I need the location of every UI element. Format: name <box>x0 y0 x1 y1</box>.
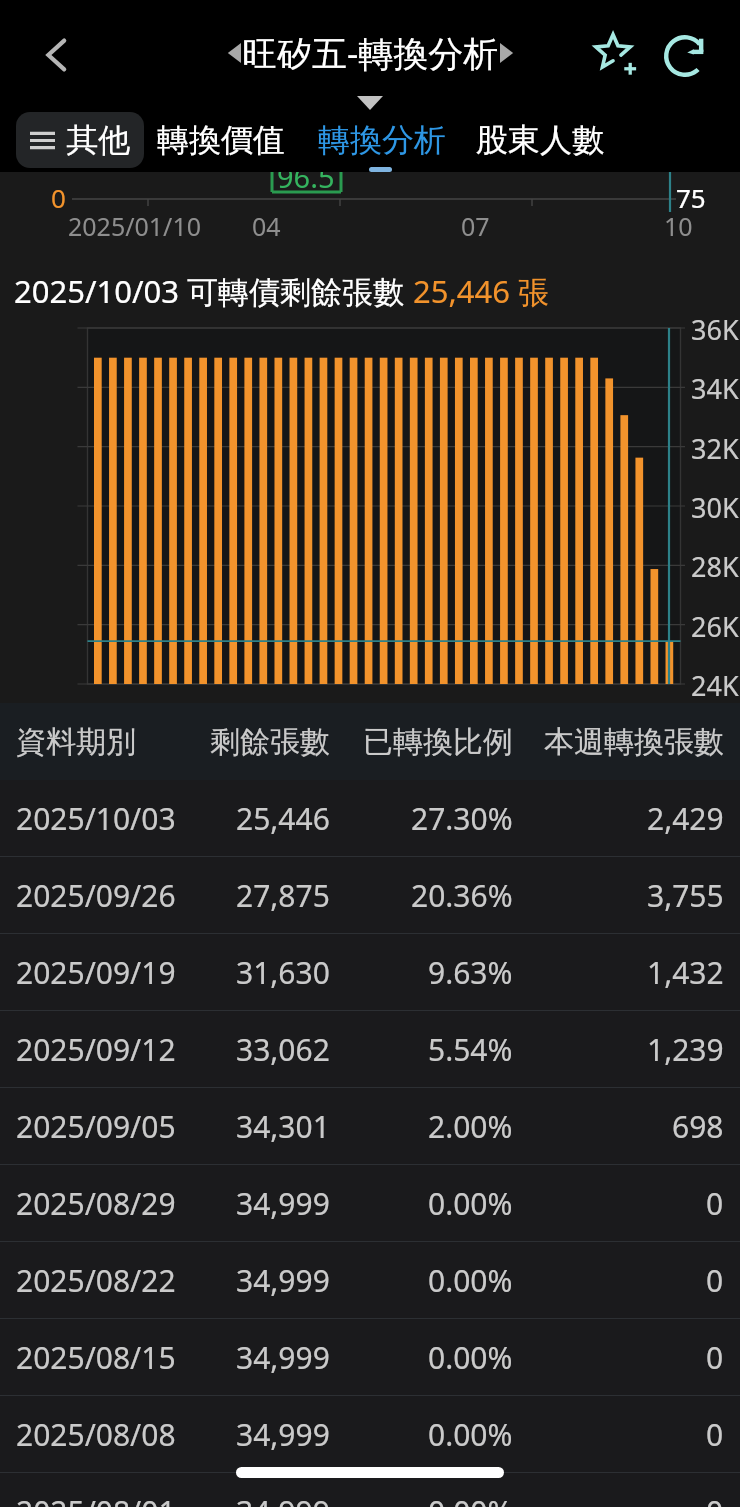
staticText: 1,239 <box>647 1029 724 1070</box>
staticText: 2025/09/12 <box>16 1029 176 1070</box>
button[interactable]: 2025/09/05 <box>0 1088 740 1164</box>
button[interactable]: 股東人數 <box>476 112 604 168</box>
staticText: 34,301 <box>236 1106 330 1147</box>
staticText: 698 <box>672 1106 724 1147</box>
staticText: 轉換分析 <box>318 120 446 160</box>
staticText: 34,999 <box>236 1183 330 1224</box>
staticText: 2025/08/22 <box>16 1260 176 1301</box>
staticText: 75 <box>676 180 706 215</box>
staticText: 96.5 <box>277 157 335 196</box>
staticText: 31,630 <box>236 952 330 993</box>
staticText: 1,432 <box>647 952 724 993</box>
button[interactable]: 2025/08/08 <box>0 1396 740 1472</box>
button[interactable]: 2025/09/26 <box>0 857 740 933</box>
button[interactable]: 2025/09/12 <box>0 1011 740 1087</box>
staticText: 資料期別 <box>16 723 136 761</box>
staticText: 33,062 <box>236 1029 330 1070</box>
staticText: 0 <box>51 180 66 215</box>
staticText: 34,999 <box>236 1491 330 1507</box>
staticText: 本週轉換張數 <box>544 723 724 761</box>
staticText: 28K <box>691 548 739 585</box>
staticText: 旺矽五-轉換分析 <box>242 29 499 77</box>
staticText: 0.00% <box>428 1337 513 1378</box>
staticText: 10 <box>664 209 693 243</box>
staticText: 0 <box>706 1414 724 1455</box>
staticText: 26K <box>691 608 739 645</box>
staticText: 0 <box>706 1260 724 1301</box>
staticText: 2.00% <box>428 1106 513 1147</box>
staticText: 24K <box>691 667 739 704</box>
button[interactable]: 2025/09/19 <box>0 934 740 1010</box>
button[interactable]: 旺矽五-轉換分析 <box>227 29 514 77</box>
staticText: 2025/10/03 <box>16 798 176 839</box>
button[interactable]: 2025/08/01 <box>0 1473 740 1507</box>
button[interactable]: Back <box>26 24 88 86</box>
staticText: 34,999 <box>236 1337 330 1378</box>
staticText: 5.54% <box>428 1029 513 1070</box>
staticText: 20.36% <box>411 875 513 916</box>
button[interactable]: 2025/08/29 <box>0 1165 740 1241</box>
staticText: 已轉換比例 <box>363 723 513 761</box>
staticText: 0 <box>706 1337 724 1378</box>
staticText: 34K <box>691 370 739 407</box>
button[interactable]: 2025/10/03 <box>0 780 740 856</box>
staticText: 27.30% <box>411 798 513 839</box>
button[interactable]: Refresh <box>653 24 717 88</box>
staticText: 0.00% <box>428 1260 513 1301</box>
staticText: 25,446 <box>236 798 330 839</box>
button[interactable]: 2025/08/22 <box>0 1242 740 1318</box>
staticText: 2025/10/03 可轉債剩餘張數 <box>14 270 413 312</box>
staticText: 2,429 <box>647 798 724 839</box>
staticText: 04 <box>252 209 281 243</box>
staticText: 2025/09/19 <box>16 952 176 993</box>
staticText: 2025/08/15 <box>16 1337 176 1378</box>
staticText: 34,999 <box>236 1260 330 1301</box>
staticText: 3,755 <box>647 875 724 916</box>
button[interactable]: Add to favourites <box>585 24 649 88</box>
staticText: 0.00% <box>428 1183 513 1224</box>
staticText: 2025/08/08 <box>16 1414 176 1455</box>
staticText: 25,446 張 <box>413 270 550 312</box>
staticText: 2025/09/26 <box>16 875 176 916</box>
button[interactable]: 其他 <box>16 112 144 168</box>
staticText: 0.00% <box>428 1414 513 1455</box>
staticText: 2025/01/10 <box>68 209 202 243</box>
staticText: 07 <box>461 209 490 243</box>
staticText: 股東人數 <box>476 120 604 160</box>
button[interactable]: 2025/08/15 <box>0 1319 740 1395</box>
staticText: 剩餘張數 <box>210 723 330 761</box>
staticText: 轉換價值 <box>157 120 285 160</box>
staticText: 2025/08/29 <box>16 1183 176 1224</box>
staticText: 其他 <box>66 120 130 160</box>
staticText: 2025/09/05 <box>16 1106 176 1147</box>
button[interactable]: 轉換價值 <box>157 112 285 168</box>
button[interactable]: 轉換分析 <box>318 112 446 168</box>
staticText: 0 <box>706 1183 724 1224</box>
staticText: 30K <box>691 489 739 526</box>
staticText: 36K <box>691 311 739 348</box>
staticText: 34,999 <box>236 1414 330 1455</box>
staticText: 2025/08/01 <box>16 1491 176 1507</box>
staticText: 0.00% <box>428 1491 513 1507</box>
staticText: 9.63% <box>428 952 513 993</box>
staticText: 0 <box>706 1491 724 1507</box>
staticText: 32K <box>691 430 739 467</box>
staticText: 27,875 <box>236 875 330 916</box>
